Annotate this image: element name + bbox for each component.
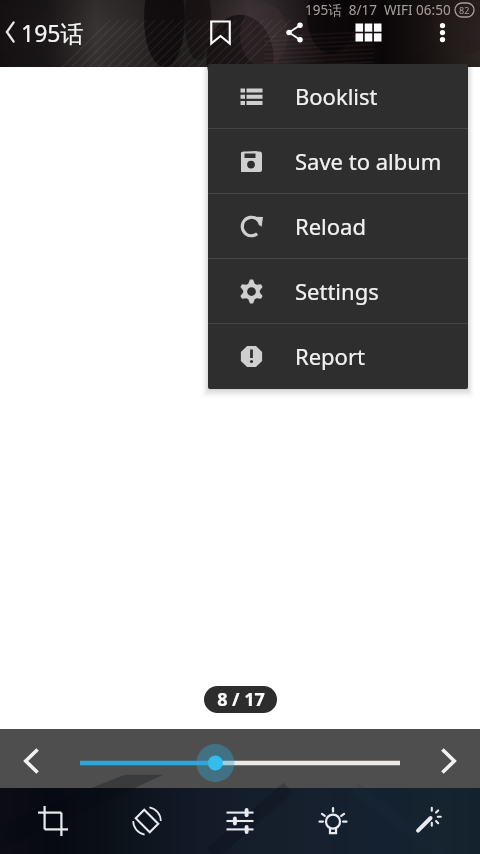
button[interactable]: Rotate — [107, 788, 187, 854]
staticText: Save to album — [295, 146, 442, 176]
button[interactable]: Effects — [387, 788, 467, 854]
button[interactable]: Brightness — [293, 788, 373, 854]
button[interactable]: 195话 — [0, 8, 92, 56]
button[interactable]: Bookmark — [183, 4, 257, 60]
button[interactable]: Report — [208, 324, 468, 388]
button[interactable]: More options — [405, 4, 479, 60]
staticText: Report — [295, 341, 365, 371]
staticText: Reload — [295, 211, 366, 241]
button[interactable]: Crop — [13, 788, 93, 854]
staticText: Settings — [295, 276, 379, 306]
button[interactable]: Previous page — [0, 734, 62, 788]
staticText: 8 / 17 — [217, 687, 265, 712]
button[interactable]: Adjust — [200, 788, 280, 854]
button[interactable]: Settings — [208, 259, 468, 323]
staticText: 195话 8/17 WIFI 06:50 — [305, 1, 451, 19]
button[interactable]: Grid — [331, 4, 405, 60]
button[interactable]: Reload — [208, 194, 468, 258]
button[interactable]: Save to album — [208, 129, 468, 193]
button[interactable]: Page slider — [62, 729, 418, 788]
staticText: 195话 — [21, 17, 84, 48]
button[interactable]: Next page — [418, 734, 480, 788]
staticText: Booklist — [295, 81, 378, 111]
button[interactable]: Share — [257, 4, 331, 60]
staticText: 82 — [459, 4, 470, 16]
button[interactable]: Booklist — [208, 64, 468, 128]
